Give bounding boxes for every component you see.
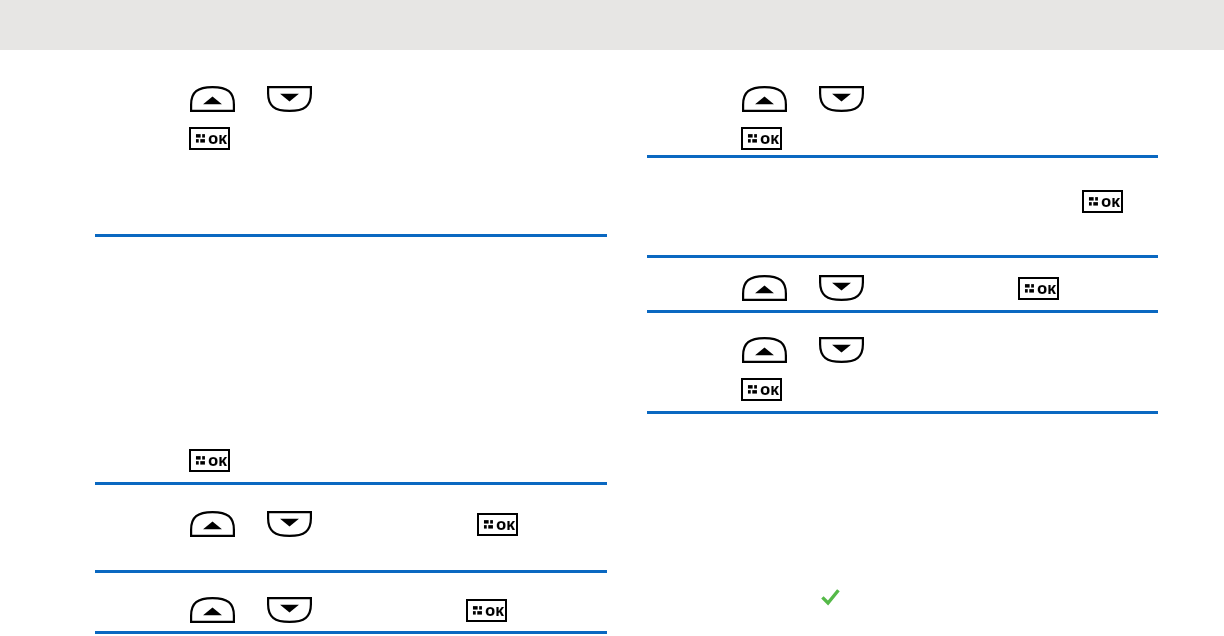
staticText: OK	[485, 602, 505, 620]
button[interactable]: Scroll down	[819, 275, 864, 301]
staticText: OK	[1101, 193, 1121, 211]
button[interactable]: Menu OK	[189, 127, 230, 150]
button[interactable]: Scroll down	[819, 337, 864, 363]
button[interactable]: Menu OK	[1018, 277, 1059, 300]
button[interactable]: Scroll up	[742, 275, 787, 301]
staticText: OK	[208, 130, 228, 148]
button[interactable]: Scroll down	[267, 597, 312, 623]
staticText: OK	[208, 452, 228, 470]
button[interactable]: Menu OK	[1082, 190, 1123, 213]
button[interactable]: Scroll down	[267, 86, 312, 112]
button[interactable]: Scroll up	[190, 86, 235, 112]
staticText: OK	[760, 130, 780, 148]
button[interactable]: Scroll down	[267, 511, 312, 537]
button[interactable]: Scroll up	[742, 86, 787, 112]
button[interactable]: Scroll down	[819, 86, 864, 112]
staticText: OK	[760, 381, 780, 399]
button[interactable]: Menu OK	[189, 449, 230, 472]
button[interactable]: Scroll up	[190, 597, 235, 623]
button[interactable]: Menu OK	[741, 127, 782, 150]
button[interactable]: Menu OK	[466, 599, 507, 622]
staticText: OK	[1037, 280, 1057, 298]
button[interactable]: Scroll up	[190, 511, 235, 537]
button[interactable]: Scroll up	[742, 337, 787, 363]
staticText: OK	[496, 516, 516, 534]
other: Success	[820, 587, 840, 607]
button[interactable]: Menu OK	[741, 378, 782, 401]
button[interactable]: Menu OK	[477, 513, 518, 536]
